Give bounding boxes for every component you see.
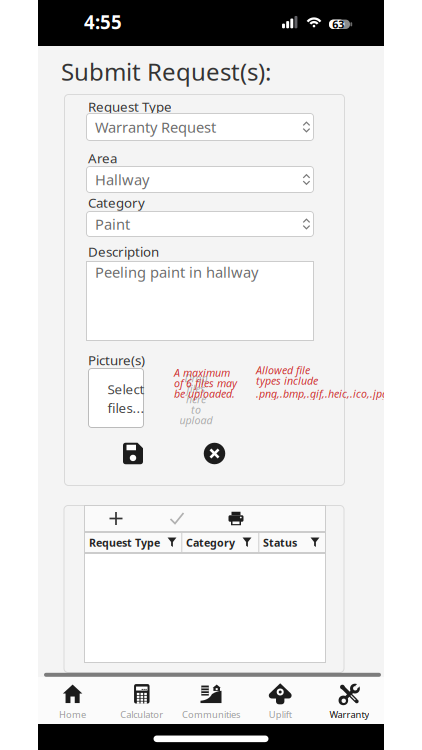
button[interactable]: Apply <box>165 506 189 530</box>
staticText: Warranty Request <box>95 117 216 137</box>
button[interactable]: Filter Category <box>239 534 255 550</box>
staticText: be uploaded. <box>174 386 235 401</box>
button[interactable]: Warranty <box>315 680 384 724</box>
staticText: Paint <box>95 214 130 234</box>
button[interactable]: Filter Request Type <box>164 534 180 550</box>
staticText: files <box>186 381 205 396</box>
button[interactable]: Save <box>116 436 150 470</box>
staticText: Area <box>88 149 117 167</box>
staticText: 4:55 <box>84 10 122 34</box>
staticText: Request Type <box>88 98 172 115</box>
staticText: .png,.bmp,.gif,.heic,.ico,.jpg,.jpeg <box>256 386 414 401</box>
staticText: of 6 files may <box>174 376 237 390</box>
staticText: upload <box>179 413 212 427</box>
button[interactable]: Home <box>38 680 107 724</box>
staticText: Warranty <box>329 708 369 721</box>
button[interactable]: Hallway <box>86 166 314 193</box>
staticText: 63 <box>332 17 344 31</box>
staticText: to <box>191 402 201 417</box>
staticText: Allowed file <box>256 363 310 377</box>
staticText: here <box>186 392 206 406</box>
staticText: Request Type <box>89 535 160 550</box>
staticText: Calculator <box>120 708 163 721</box>
staticText: Communities <box>182 708 240 721</box>
staticText: Category <box>88 194 145 211</box>
staticText: Drop <box>184 371 207 385</box>
button[interactable]: Print <box>224 506 248 530</box>
button[interactable]: Add <box>104 506 128 530</box>
staticText: files... <box>107 399 144 417</box>
staticText: Uplift <box>269 708 292 721</box>
staticText: Hallway <box>95 170 149 189</box>
staticText: Peeling paint in hallway <box>95 262 258 282</box>
button[interactable]: Calculator <box>107 680 176 724</box>
staticText: A maximum <box>174 365 230 380</box>
staticText: Submit Request(s): <box>61 56 271 87</box>
staticText: Description <box>88 243 159 260</box>
button[interactable]: Filter Status <box>307 534 323 550</box>
button[interactable]: Select <box>88 368 144 428</box>
staticText: Category <box>186 535 235 550</box>
staticText: Home <box>59 708 86 721</box>
staticText: Picture(s) <box>88 351 145 369</box>
button[interactable]: Uplift <box>246 680 315 724</box>
staticText: types include <box>256 373 318 388</box>
button[interactable]: Communities <box>176 680 245 724</box>
button[interactable]: Cancel <box>197 436 231 470</box>
staticText: Select <box>107 380 144 398</box>
button[interactable]: Warranty Request <box>86 113 314 141</box>
staticText: Status <box>263 535 297 550</box>
button[interactable]: Paint <box>86 211 314 237</box>
